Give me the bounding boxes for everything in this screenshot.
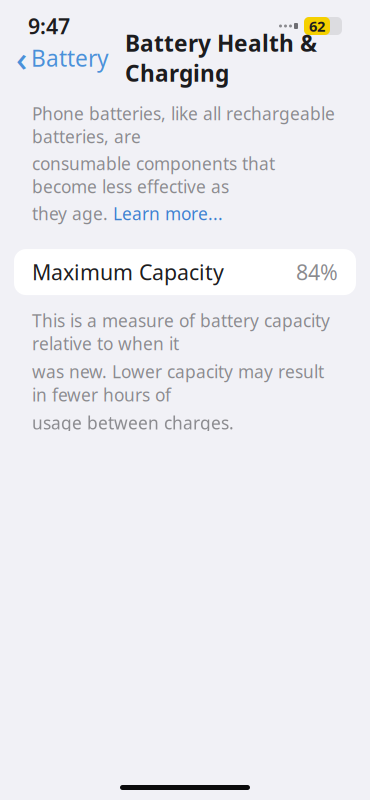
staticText: ‹: [16, 35, 27, 81]
button[interactable]: Learn more...: [113, 202, 223, 225]
staticText: Phone batteries, like all rechargeable b…: [32, 102, 335, 148]
staticText: was new. Lower capacity may result in fe…: [32, 360, 324, 406]
staticText: Learn more...: [113, 202, 223, 225]
staticText: consumable components that become less e…: [32, 152, 275, 198]
staticText: Battery Health & Charging: [125, 28, 317, 88]
button[interactable]: Maximum Capacity: [14, 249, 356, 295]
staticText: usage between charges.: [32, 411, 234, 434]
staticText: 9:47: [28, 12, 70, 40]
staticText: This is a measure of battery capacity re…: [32, 309, 330, 355]
button[interactable]: ‹: [6, 31, 119, 85]
staticText: Battery: [31, 43, 109, 73]
staticText: Maximum Capacity: [32, 258, 224, 286]
staticText: 84%: [296, 258, 338, 286]
staticText: 62: [309, 16, 325, 36]
staticText: they age.: [32, 202, 113, 225]
